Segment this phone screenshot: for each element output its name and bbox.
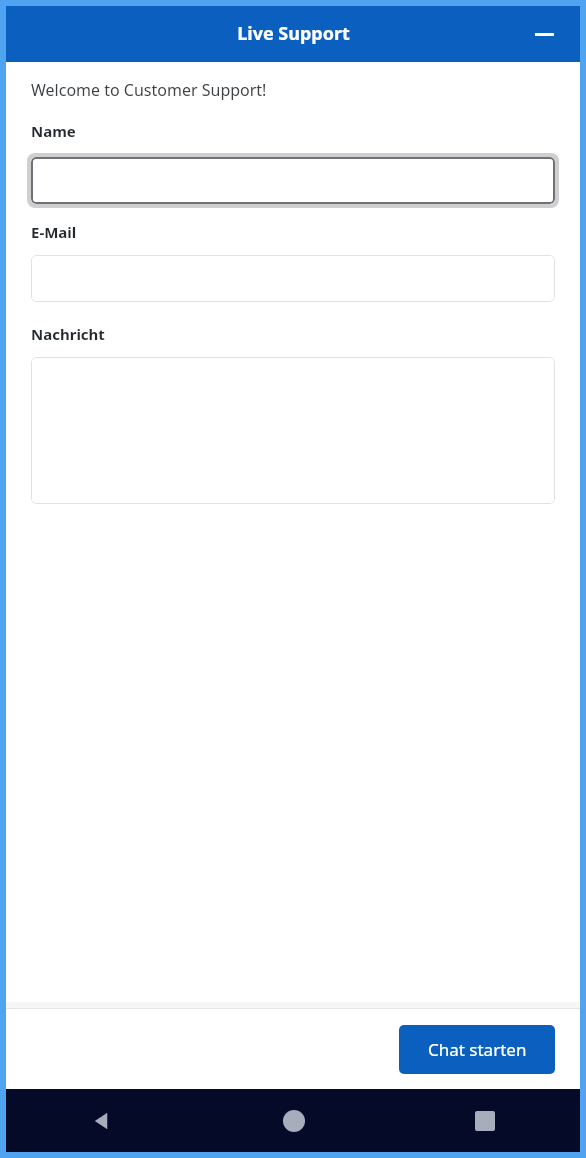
- button[interactable]: Minimize: [528, 18, 560, 50]
- button[interactable]: [31, 357, 555, 504]
- button[interactable]: Back: [6, 1089, 198, 1152]
- button[interactable]: Recent apps: [389, 1089, 580, 1152]
- button[interactable]: [31, 255, 555, 302]
- staticText: Nachricht: [31, 324, 105, 344]
- staticText: Chat starten: [428, 1038, 527, 1061]
- staticText: Name: [31, 121, 76, 141]
- staticText: E-Mail: [31, 222, 77, 242]
- button[interactable]: [31, 157, 555, 204]
- button[interactable]: Home: [198, 1089, 389, 1152]
- staticText: Welcome to Customer Support!: [31, 79, 267, 101]
- staticText: Live Support: [237, 21, 350, 46]
- button[interactable]: Chat starten: [399, 1025, 555, 1074]
